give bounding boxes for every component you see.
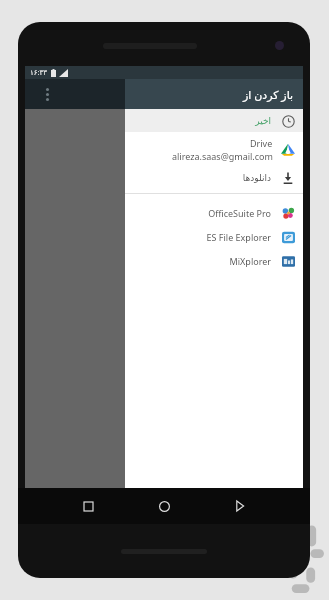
staticText: اخیر [255,116,271,126]
button[interactable]: ES File Explorer [125,225,303,249]
staticText: ۱۶:۳۳ [30,68,47,78]
button[interactable]: Back [229,495,251,517]
button[interactable]: Recents [77,495,99,517]
button[interactable]: MiXplorer [125,249,303,273]
button[interactable]: Home [153,495,175,517]
button[interactable]: دانلودها [125,166,303,190]
staticText: Drive [250,137,273,149]
button[interactable]: OfficeSuite Pro [125,201,303,225]
staticText: alireza.saas@gmail.com [172,150,273,162]
staticText: ES File Explorer [206,231,271,243]
staticText: MiXplorer [229,255,271,267]
staticText: دانلودها [242,173,271,183]
staticText: OfficeSuite Pro [208,207,271,219]
staticText: باز کردن از [243,87,294,102]
button[interactable]: Drive [125,132,303,166]
button[interactable]: اخیر [125,109,303,132]
button[interactable]: More options [38,85,56,103]
